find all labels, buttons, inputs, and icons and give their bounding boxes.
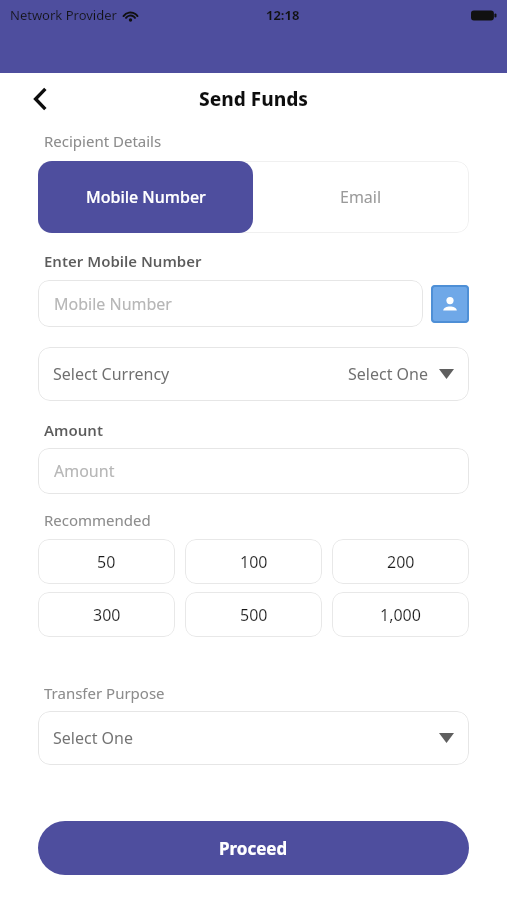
staticText: Select One: [53, 727, 133, 749]
button[interactable]: Select One: [38, 711, 469, 765]
staticText: 500: [240, 604, 268, 626]
button[interactable]: 300: [38, 592, 175, 637]
button[interactable]: Back: [22, 81, 58, 117]
staticText: Recipient Details: [44, 131, 162, 151]
button[interactable]: 1,000: [332, 592, 469, 637]
staticText: 200: [387, 551, 415, 573]
staticText: Network Provider: [10, 6, 117, 24]
button[interactable]: 100: [185, 539, 322, 584]
button[interactable]: Select Currency: [38, 347, 469, 401]
staticText: Send Funds: [199, 86, 308, 112]
staticText: Mobile Number: [54, 293, 172, 315]
staticText: Transfer Purpose: [44, 683, 165, 703]
button[interactable]: Pick contact: [431, 285, 469, 323]
button[interactable]: Proceed: [38, 821, 469, 875]
button[interactable]: Mobile Number: [38, 161, 253, 233]
staticText: Enter Mobile Number: [44, 251, 202, 271]
staticText: Email: [340, 186, 382, 208]
staticText: 50: [97, 551, 116, 573]
staticText: 300: [93, 604, 121, 626]
button[interactable]: Email: [253, 161, 469, 233]
staticText: Proceed: [219, 837, 288, 860]
staticText: 1,000: [380, 604, 421, 626]
button[interactable]: 50: [38, 539, 175, 584]
staticText: Amount: [44, 420, 103, 440]
staticText: 100: [240, 551, 268, 573]
staticText: 12:18: [266, 6, 300, 24]
staticText: Recommended: [44, 510, 151, 530]
staticText: Select One: [348, 363, 428, 385]
button[interactable]: Mobile Number: [38, 280, 423, 327]
button[interactable]: 200: [332, 539, 469, 584]
staticText: Amount: [54, 460, 115, 482]
button[interactable]: 500: [185, 592, 322, 637]
staticText: Mobile Number: [86, 186, 206, 208]
button[interactable]: Amount: [38, 448, 469, 494]
staticText: Select Currency: [53, 363, 170, 385]
